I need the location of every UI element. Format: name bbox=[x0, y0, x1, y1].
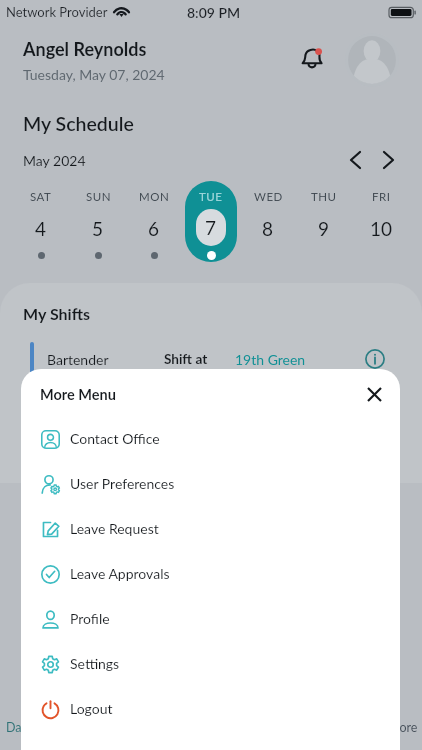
button[interactable]: Close menu bbox=[357, 377, 391, 411]
staticText: 10 bbox=[370, 217, 393, 240]
staticText: 9 bbox=[318, 217, 330, 240]
staticText: More Menu bbox=[40, 386, 116, 403]
staticText: 8:09 PM bbox=[187, 4, 241, 21]
staticText: User Preferences bbox=[70, 475, 175, 492]
staticText: Tuesday, May 07, 2024 bbox=[23, 66, 165, 83]
staticText: More bbox=[388, 720, 418, 735]
staticText: 5 bbox=[92, 217, 104, 240]
staticText: Logout bbox=[70, 700, 113, 717]
staticText: 4 bbox=[35, 217, 47, 240]
staticText: My Shifts bbox=[23, 304, 90, 323]
staticText: MON bbox=[139, 190, 170, 204]
button[interactable]: Contact Office bbox=[21, 416, 400, 461]
button[interactable]: Profile bbox=[21, 596, 400, 641]
button[interactable]: SUN bbox=[72, 181, 124, 262]
button[interactable]: Shift info bbox=[362, 346, 388, 372]
staticText: 19th Green bbox=[235, 351, 306, 368]
staticText: 8 bbox=[262, 217, 274, 240]
staticText: 7 bbox=[205, 216, 217, 239]
button[interactable]: User Preferences bbox=[21, 461, 400, 506]
button[interactable]: Next month bbox=[372, 147, 404, 173]
button[interactable]: THU bbox=[298, 181, 350, 262]
staticText: Profile bbox=[70, 610, 110, 627]
staticText: Leave Approvals bbox=[70, 565, 170, 582]
staticText: FRI bbox=[372, 190, 391, 204]
staticText: TUE bbox=[199, 190, 223, 204]
staticText: WED bbox=[254, 190, 283, 204]
button[interactable]: Previous month bbox=[339, 147, 371, 173]
staticText: Shift at bbox=[164, 351, 208, 367]
button[interactable]: MON bbox=[128, 181, 180, 262]
staticText: Angel Reynolds bbox=[23, 38, 147, 60]
button[interactable]: Leave Approvals bbox=[21, 551, 400, 596]
button[interactable]: SAT bbox=[15, 181, 67, 262]
button[interactable]: Settings bbox=[21, 641, 400, 686]
button[interactable]: Notifications bbox=[295, 43, 329, 77]
staticText: Bartender bbox=[47, 351, 109, 368]
staticText: Network Provider bbox=[6, 4, 108, 20]
button[interactable]: Profile avatar bbox=[345, 33, 399, 87]
staticText: SUN bbox=[86, 190, 111, 204]
button[interactable]: TUE bbox=[185, 181, 237, 262]
staticText: Leave Request bbox=[70, 520, 159, 537]
button[interactable]: Leave Request bbox=[21, 506, 400, 551]
staticText: THU bbox=[311, 190, 337, 204]
staticText: SAT bbox=[30, 190, 52, 204]
staticText: My Schedule bbox=[23, 112, 134, 135]
staticText: May 2024 bbox=[23, 152, 86, 169]
button[interactable]: WED bbox=[242, 181, 294, 262]
staticText: Contact Office bbox=[70, 430, 160, 447]
staticText: Dashboard bbox=[6, 720, 66, 735]
button[interactable]: FRI bbox=[355, 181, 407, 262]
button[interactable]: Logout bbox=[21, 686, 400, 731]
staticText: 6 bbox=[148, 217, 160, 240]
staticText: Settings bbox=[70, 655, 120, 672]
